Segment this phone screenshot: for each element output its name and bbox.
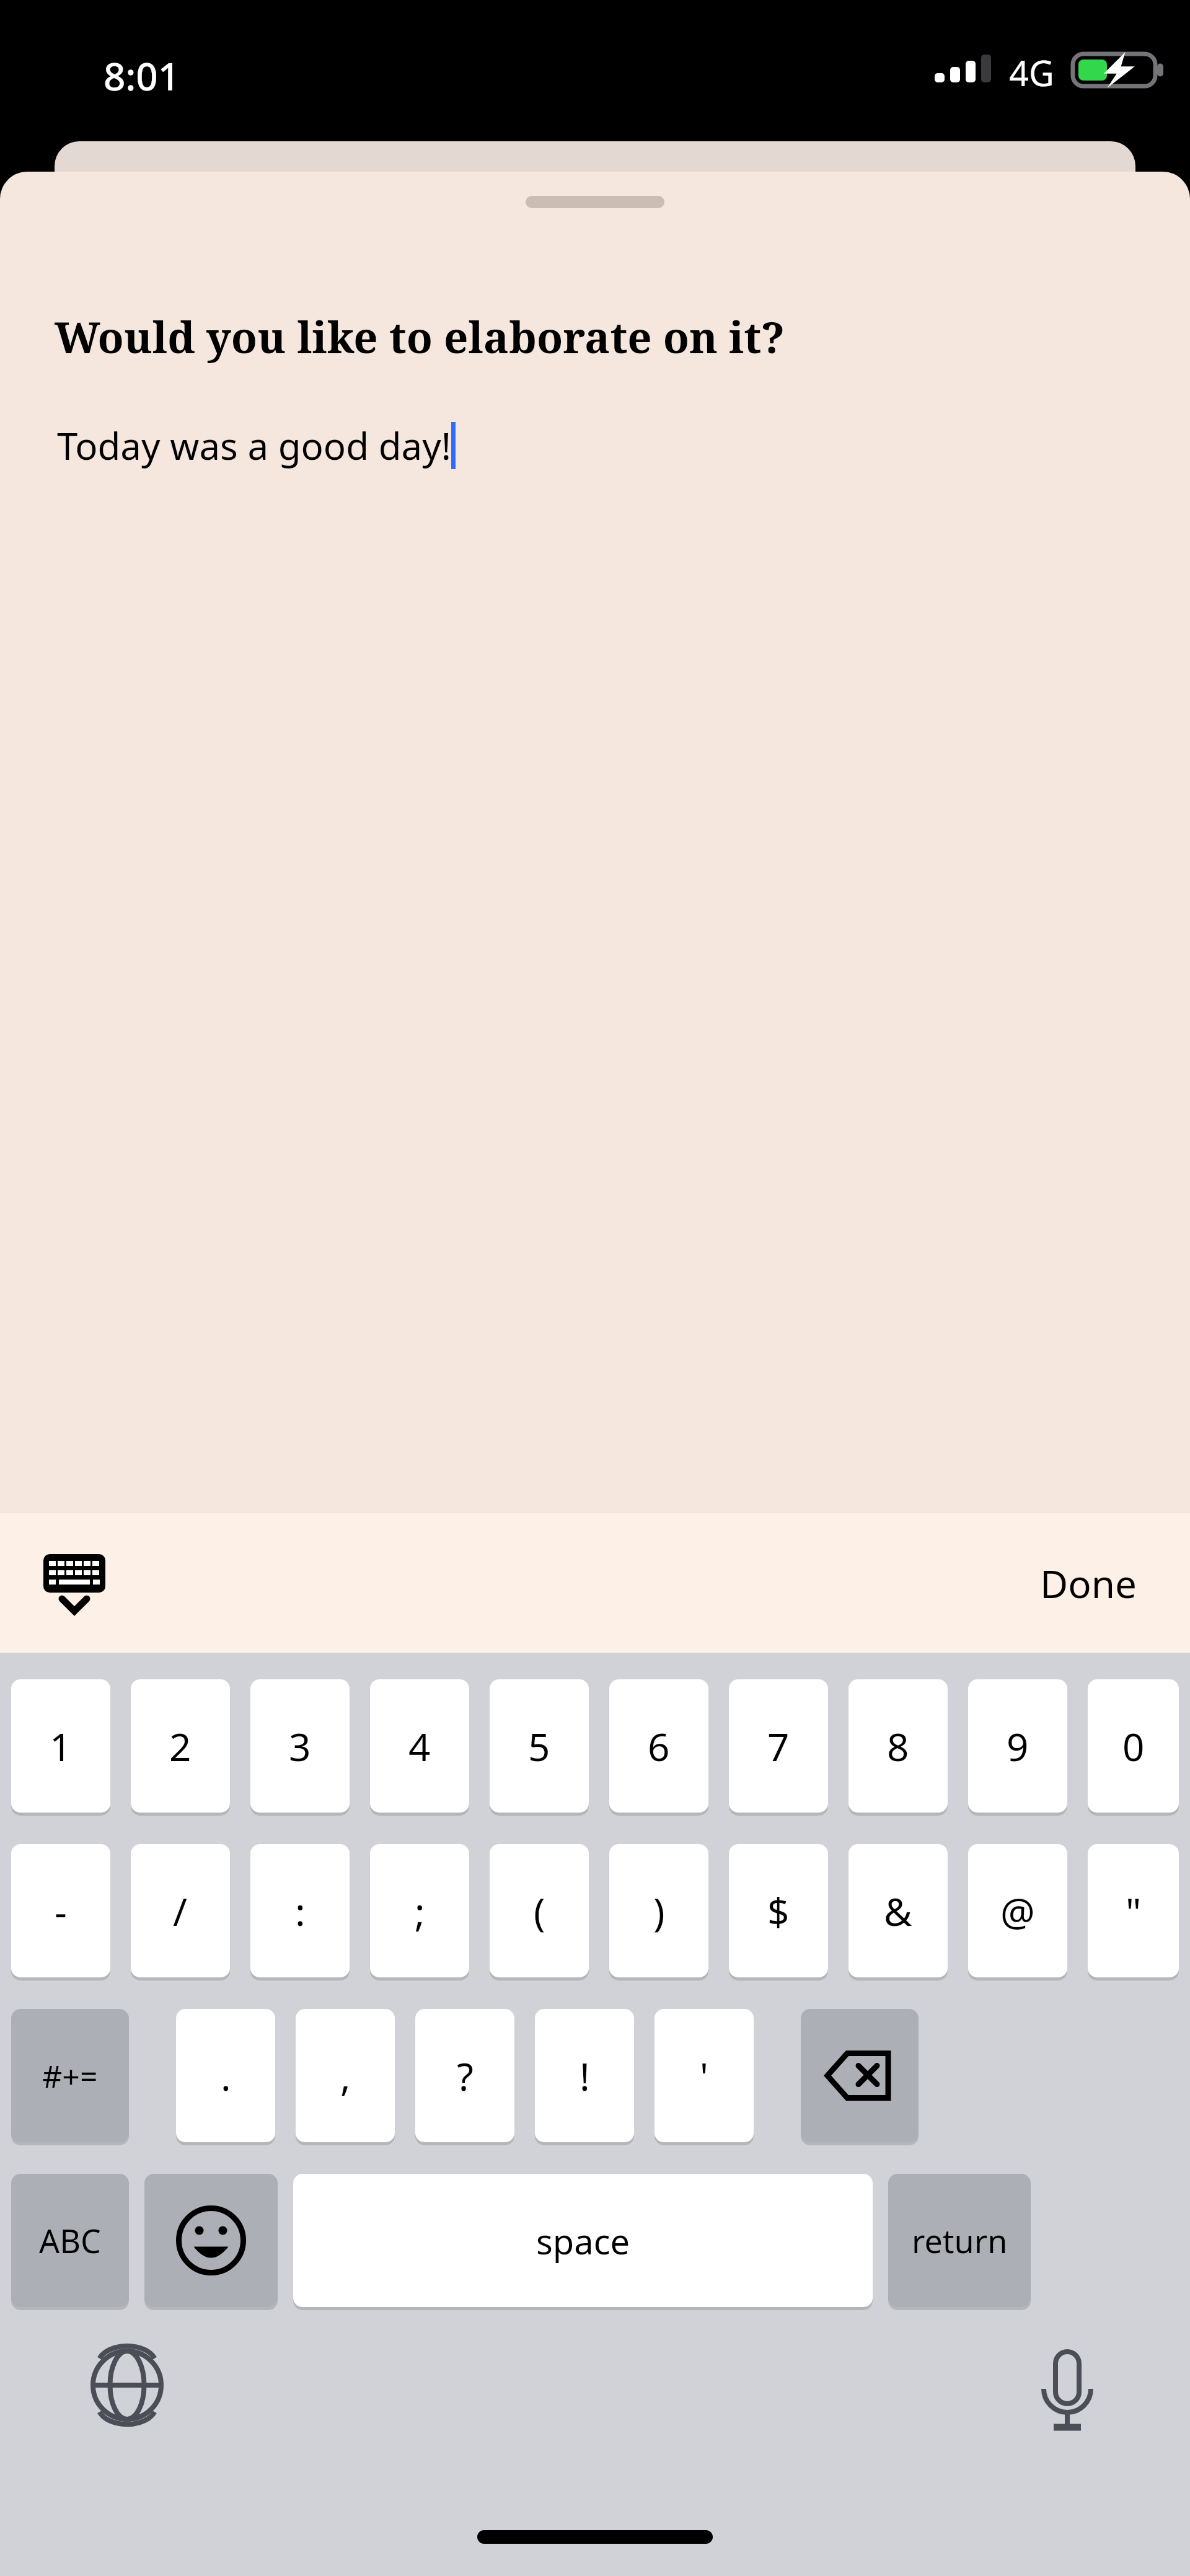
button[interactable]: 4 <box>370 1679 469 1813</box>
button[interactable]: 6 <box>609 1679 708 1813</box>
staticText: 7 <box>767 1720 790 1772</box>
button[interactable]: , <box>296 2009 395 2142</box>
staticText: 8:01 <box>104 50 180 102</box>
staticText: space <box>536 2217 630 2264</box>
button[interactable]: ? <box>415 2009 514 2142</box>
staticText: : <box>295 1885 306 1937</box>
staticText: . <box>221 2050 231 2102</box>
staticText: 0 <box>1122 1720 1145 1772</box>
staticText: Done <box>1040 1557 1137 1609</box>
button[interactable]: Emoji <box>144 2174 278 2307</box>
button[interactable]: ) <box>609 1844 708 1977</box>
button[interactable]: Dictate <box>1030 2347 1104 2421</box>
staticText: ! <box>580 2050 590 2102</box>
staticText: ; <box>415 1885 425 1937</box>
button[interactable]: #+= <box>11 2009 129 2142</box>
staticText: 9 <box>1007 1720 1029 1772</box>
staticText: " <box>1126 1885 1142 1937</box>
staticText: 6 <box>648 1720 670 1772</box>
staticText: 1 <box>50 1720 72 1772</box>
button[interactable]: 9 <box>968 1679 1067 1813</box>
button[interactable]: 1 <box>11 1679 110 1813</box>
staticText: - <box>55 1885 67 1937</box>
button[interactable]: Done <box>1040 1557 1137 1609</box>
button[interactable]: Change keyboard <box>90 2348 164 2422</box>
staticText: Would you like to elaborate on it? <box>55 307 785 366</box>
button[interactable]: ' <box>654 2009 754 2142</box>
staticText: 5 <box>528 1720 550 1772</box>
staticText: 3 <box>289 1720 311 1772</box>
staticText: , <box>340 2050 351 2102</box>
button[interactable]: / <box>131 1844 230 1977</box>
button[interactable]: & <box>848 1844 948 1977</box>
staticText: return <box>912 2218 1008 2262</box>
button[interactable]: . <box>176 2009 275 2142</box>
button[interactable]: 3 <box>250 1679 350 1813</box>
button[interactable]: ! <box>535 2009 634 2142</box>
button[interactable]: " <box>1088 1844 1179 1977</box>
button[interactable]: ABC <box>11 2174 129 2307</box>
button[interactable]: Hide keyboard <box>32 1550 119 1619</box>
staticText: 4G <box>1009 49 1054 96</box>
staticText: ? <box>457 2050 474 2102</box>
staticText: ( <box>534 1885 545 1937</box>
button[interactable]: Delete <box>801 2009 919 2142</box>
button[interactable]: 7 <box>729 1679 828 1813</box>
button[interactable]: return <box>888 2174 1031 2307</box>
button[interactable]: 2 <box>131 1679 230 1813</box>
staticText: 4 <box>408 1720 431 1772</box>
staticText: #+= <box>42 2055 98 2097</box>
button[interactable]: 8 <box>848 1679 948 1813</box>
staticText: @ <box>1000 1885 1035 1937</box>
button[interactable]: - <box>11 1844 110 1977</box>
staticText: ' <box>700 2050 708 2102</box>
staticText: & <box>884 1885 912 1937</box>
staticText: ABC <box>39 2218 101 2262</box>
button[interactable]: @ <box>968 1844 1067 1977</box>
button[interactable]: $ <box>729 1844 828 1977</box>
button[interactable]: space <box>293 2174 873 2307</box>
button[interactable]: 0 <box>1088 1679 1179 1813</box>
staticText: 8 <box>887 1720 909 1772</box>
staticText: 2 <box>169 1720 192 1772</box>
button[interactable]: ( <box>490 1844 589 1977</box>
staticText: / <box>173 1885 188 1937</box>
button[interactable]: ; <box>370 1844 469 1977</box>
staticText: $ <box>767 1885 790 1937</box>
button[interactable]: : <box>250 1844 350 1977</box>
button[interactable]: 5 <box>490 1679 589 1813</box>
staticText: ) <box>653 1885 665 1937</box>
staticText: Today was a good day! <box>57 420 451 471</box>
